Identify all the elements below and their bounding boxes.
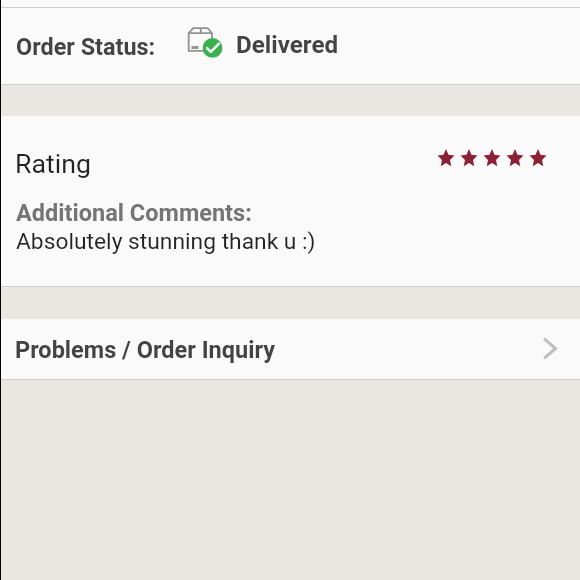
staticText: Absolutely stunning thank u :) — [16, 228, 316, 255]
staticText: Rating — [15, 148, 91, 179]
button[interactable]: Order Status: — [0, 8, 580, 84]
button[interactable]: Rating: 5 out of 5 stars — [437, 149, 547, 168]
staticText: Problems / Order Inquiry — [15, 336, 275, 364]
other: Open order inquiry — [542, 337, 557, 360]
button[interactable]: Problems / Order Inquiry — [0, 319, 580, 379]
other: Delivered package — [186, 24, 226, 62]
staticText: Order Status: — [16, 33, 156, 60]
staticText: Delivered — [236, 31, 339, 59]
staticText: Additional Comments: — [16, 199, 252, 227]
